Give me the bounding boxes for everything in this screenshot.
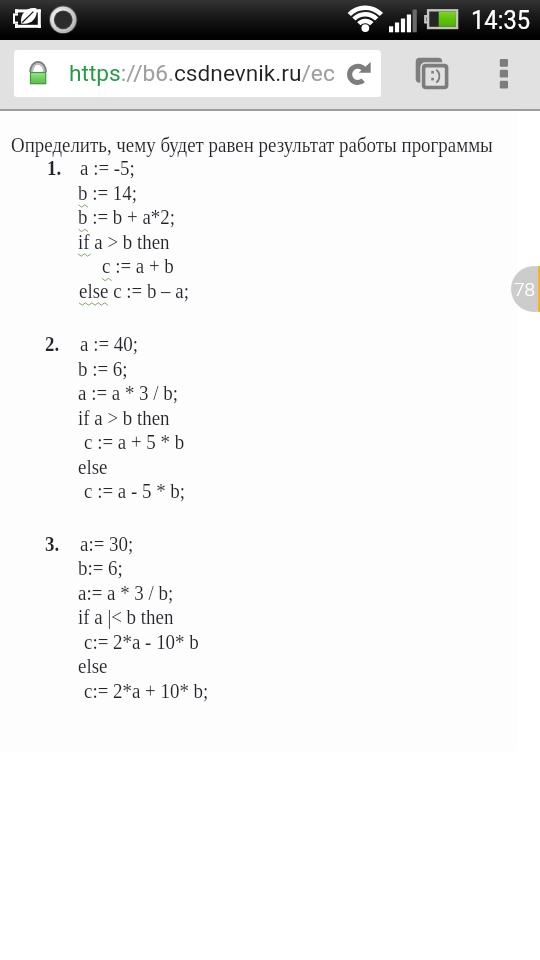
staticText: a := 40; (80, 332, 138, 356)
staticText: c:= 2*a + 10* b; (84, 679, 209, 703)
button[interactable]: https://b6.csdnevnik.ru/ec (14, 50, 381, 97)
staticText: 14:35 (471, 5, 530, 35)
staticText: if a > b then (78, 230, 170, 254)
staticText: 1. (47, 156, 62, 180)
staticText: c:= 2*a - 10* b (84, 630, 199, 654)
staticText: 3. (45, 532, 60, 556)
button[interactable]: Scroll position 78 (511, 266, 540, 312)
staticText: else c := b – a; (79, 279, 189, 303)
staticText: 2. (45, 332, 60, 356)
staticText: if a |< b then (78, 605, 174, 629)
staticText: b := 14; (78, 181, 138, 205)
staticText: c := a - 5 * b; (84, 479, 185, 503)
staticText: 78 (514, 278, 536, 300)
staticText: a := a * 3 / b; (78, 381, 178, 405)
staticText: if a > b then (78, 406, 170, 430)
button[interactable]: Tabs (397, 50, 452, 97)
staticText: a:= a * 3 / b; (78, 581, 174, 605)
button[interactable]: More options (478, 50, 528, 97)
staticText: b:= 6; (78, 556, 123, 580)
staticText: else (78, 455, 108, 479)
staticText: https://b6.csdnevnik.ru/ec (69, 60, 335, 87)
staticText: b := 6; (78, 357, 128, 381)
staticText: a:= 30; (80, 532, 134, 556)
staticText: Определить, чему будет равен результат р… (11, 133, 493, 157)
staticText: b := b + a*2; (78, 205, 176, 229)
staticText: c := a + 5 * b (84, 430, 184, 454)
staticText: c := a + b (102, 254, 174, 278)
staticText: a := -5; (80, 156, 135, 180)
staticText: else (78, 654, 108, 678)
